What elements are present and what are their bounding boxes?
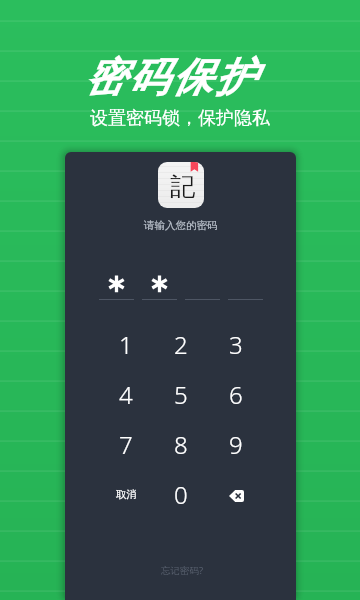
staticText: 密码保护 [83,52,257,102]
button[interactable]: 取消 [99,469,153,519]
staticText: 3 [229,328,243,361]
staticText: 7 [119,428,133,461]
staticText: 1 [119,328,133,361]
staticText: 記 [170,171,195,202]
staticText: 9 [229,428,243,461]
button[interactable]: 1 [99,319,153,369]
staticText: 取消 [116,488,137,501]
button[interactable]: Backspace [208,469,263,519]
staticText: 8 [174,428,188,461]
button[interactable]: 3 [208,319,263,369]
staticText: 请输入您的密码 [144,219,218,232]
button[interactable]: 2 [153,319,208,369]
button[interactable]: 5 [153,369,208,419]
button[interactable]: 4 [99,369,153,419]
button[interactable]: 7 [99,419,153,469]
staticText: 0 [174,478,188,511]
staticText: 6 [229,378,243,411]
button[interactable]: 9 [208,419,263,469]
button[interactable]: Backspace [219,482,253,506]
button[interactable]: 8 [153,419,208,469]
button[interactable]: 忘记密码? [161,564,204,577]
button[interactable]: 0 [153,469,208,519]
staticText: 设置密码锁，保护隐私 [90,107,270,130]
staticText: 5 [174,378,188,411]
staticText: 2 [174,328,188,361]
staticText: 4 [119,378,133,411]
button[interactable]: 6 [208,369,263,419]
